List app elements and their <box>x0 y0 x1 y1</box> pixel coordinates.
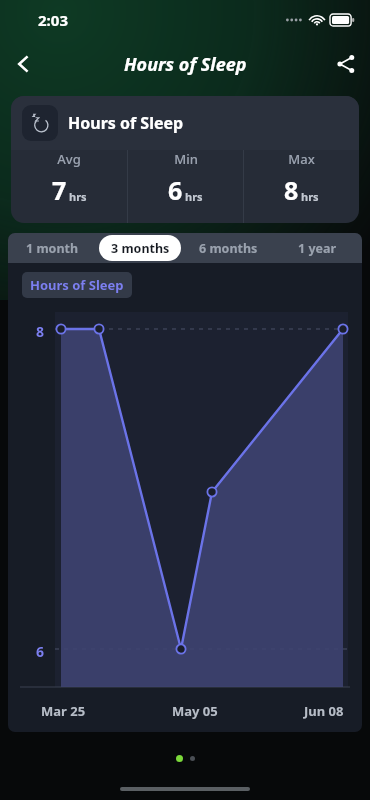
staticText: 6 <box>36 642 45 661</box>
button[interactable]: 6 months <box>187 235 270 261</box>
staticText: 8 <box>36 322 45 341</box>
button[interactable]: 3 months <box>99 235 181 261</box>
button[interactable]: Back <box>0 40 48 88</box>
button[interactable]: 1 month <box>11 235 93 261</box>
button[interactable]: 1 year <box>276 235 359 261</box>
staticText: 3 months <box>111 240 170 257</box>
staticText: 2:03 <box>38 10 68 30</box>
staticText: Mar 25 <box>41 702 86 720</box>
staticText: hrs <box>301 189 319 204</box>
staticText: 6 <box>168 173 183 207</box>
staticText: Avg <box>57 150 81 168</box>
button[interactable]: Hours of Sleep <box>30 276 124 294</box>
staticText: 6 months <box>199 240 258 257</box>
staticText: Jun 08 <box>304 702 344 720</box>
staticText: Hours of Sleep <box>30 276 124 294</box>
staticText: 1 year <box>298 240 337 257</box>
staticText: 8 <box>284 173 299 207</box>
staticText: hrs <box>69 189 87 204</box>
staticText: hrs <box>185 189 203 204</box>
staticText: 1 month <box>26 240 79 257</box>
staticText: May 05 <box>172 702 218 720</box>
staticText: Hours of Sleep <box>124 52 247 77</box>
button[interactable]: Share <box>322 40 370 88</box>
staticText: Max <box>288 150 315 168</box>
staticText: 7 <box>52 173 67 207</box>
button[interactable]: Hours of Sleep <box>11 96 359 223</box>
staticText: Hours of Sleep <box>68 112 184 134</box>
staticText: Min <box>174 150 198 168</box>
